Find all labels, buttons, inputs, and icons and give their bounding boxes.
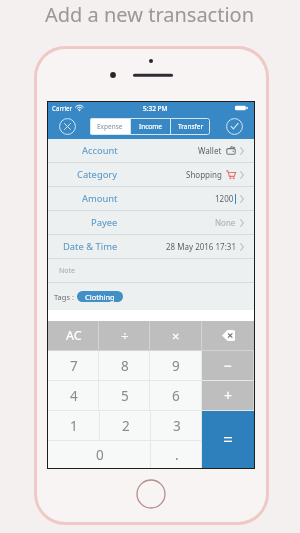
staticText: 3 bbox=[173, 417, 181, 435]
staticText: Amount bbox=[82, 192, 118, 205]
staticText: + bbox=[224, 386, 233, 405]
button[interactable]: Date & Time bbox=[48, 235, 254, 259]
button[interactable]: 4 bbox=[48, 381, 99, 410]
staticText: 1200 bbox=[215, 193, 234, 204]
button[interactable]: 1 bbox=[48, 411, 100, 440]
staticText: 6 bbox=[172, 387, 180, 405]
button[interactable]: Account bbox=[48, 139, 254, 163]
staticText: Shopping bbox=[186, 169, 222, 180]
staticText: Income bbox=[139, 122, 163, 131]
staticText: 1 bbox=[70, 417, 78, 435]
button[interactable]: Income bbox=[131, 118, 170, 135]
staticText: 8 bbox=[121, 357, 129, 375]
button[interactable]: Backspace bbox=[202, 321, 254, 350]
button[interactable]: Clothing bbox=[77, 291, 123, 302]
button[interactable]: 3 bbox=[151, 411, 202, 440]
button[interactable]: 8 bbox=[99, 351, 150, 380]
staticText: Note bbox=[59, 266, 76, 276]
button[interactable]: ÷ bbox=[99, 321, 150, 350]
staticText: 4 bbox=[70, 387, 78, 405]
staticText: × bbox=[172, 327, 180, 345]
button[interactable]: AC bbox=[48, 321, 99, 350]
staticText: 2 bbox=[122, 417, 130, 435]
button[interactable]: Note bbox=[59, 259, 254, 282]
staticText: 5 bbox=[121, 387, 129, 405]
staticText: ÷ bbox=[121, 327, 129, 345]
button[interactable]: 6 bbox=[150, 381, 202, 410]
button[interactable]: Close bbox=[48, 114, 86, 139]
button[interactable]: Category bbox=[48, 163, 254, 187]
button[interactable]: 2 bbox=[100, 411, 151, 440]
staticText: Tags : bbox=[54, 292, 74, 302]
button[interactable]: + bbox=[202, 381, 254, 410]
staticText: Payee bbox=[91, 216, 118, 229]
staticText: Category bbox=[77, 168, 118, 181]
staticText: Carrier bbox=[52, 104, 73, 112]
staticText: . bbox=[175, 446, 179, 464]
button[interactable]: 7 bbox=[48, 351, 99, 380]
staticText: 9 bbox=[172, 357, 180, 375]
staticText: 0 bbox=[96, 446, 104, 464]
button[interactable]: Amount bbox=[48, 187, 254, 211]
button[interactable]: Payee bbox=[48, 211, 254, 235]
button[interactable]: 0 bbox=[48, 441, 151, 468]
button[interactable]: × bbox=[150, 321, 202, 350]
staticText: Transfer bbox=[178, 122, 204, 131]
staticText: Account bbox=[82, 144, 118, 157]
staticText: 5:32 PM bbox=[143, 104, 168, 113]
staticText: Wallet bbox=[198, 145, 222, 156]
staticText: Clothing bbox=[85, 292, 115, 302]
button[interactable]: . bbox=[151, 441, 202, 468]
staticText: 7 bbox=[70, 357, 78, 375]
staticText: Add a new transaction bbox=[45, 1, 255, 28]
staticText: Expense bbox=[97, 122, 123, 131]
staticText: None bbox=[215, 217, 236, 228]
staticText: AC bbox=[66, 327, 82, 344]
button[interactable]: Done bbox=[214, 114, 254, 139]
button[interactable]: 5 bbox=[99, 381, 150, 410]
button[interactable] bbox=[202, 411, 254, 468]
staticText: − bbox=[224, 356, 233, 375]
button[interactable]: 9 bbox=[150, 351, 202, 380]
button[interactable]: Transfer bbox=[171, 118, 210, 135]
button[interactable]: − bbox=[202, 351, 254, 380]
staticText: Date & Time bbox=[63, 240, 118, 253]
staticText: 28 May 2016 17:31 bbox=[166, 241, 236, 252]
button[interactable]: Expense bbox=[90, 118, 130, 135]
